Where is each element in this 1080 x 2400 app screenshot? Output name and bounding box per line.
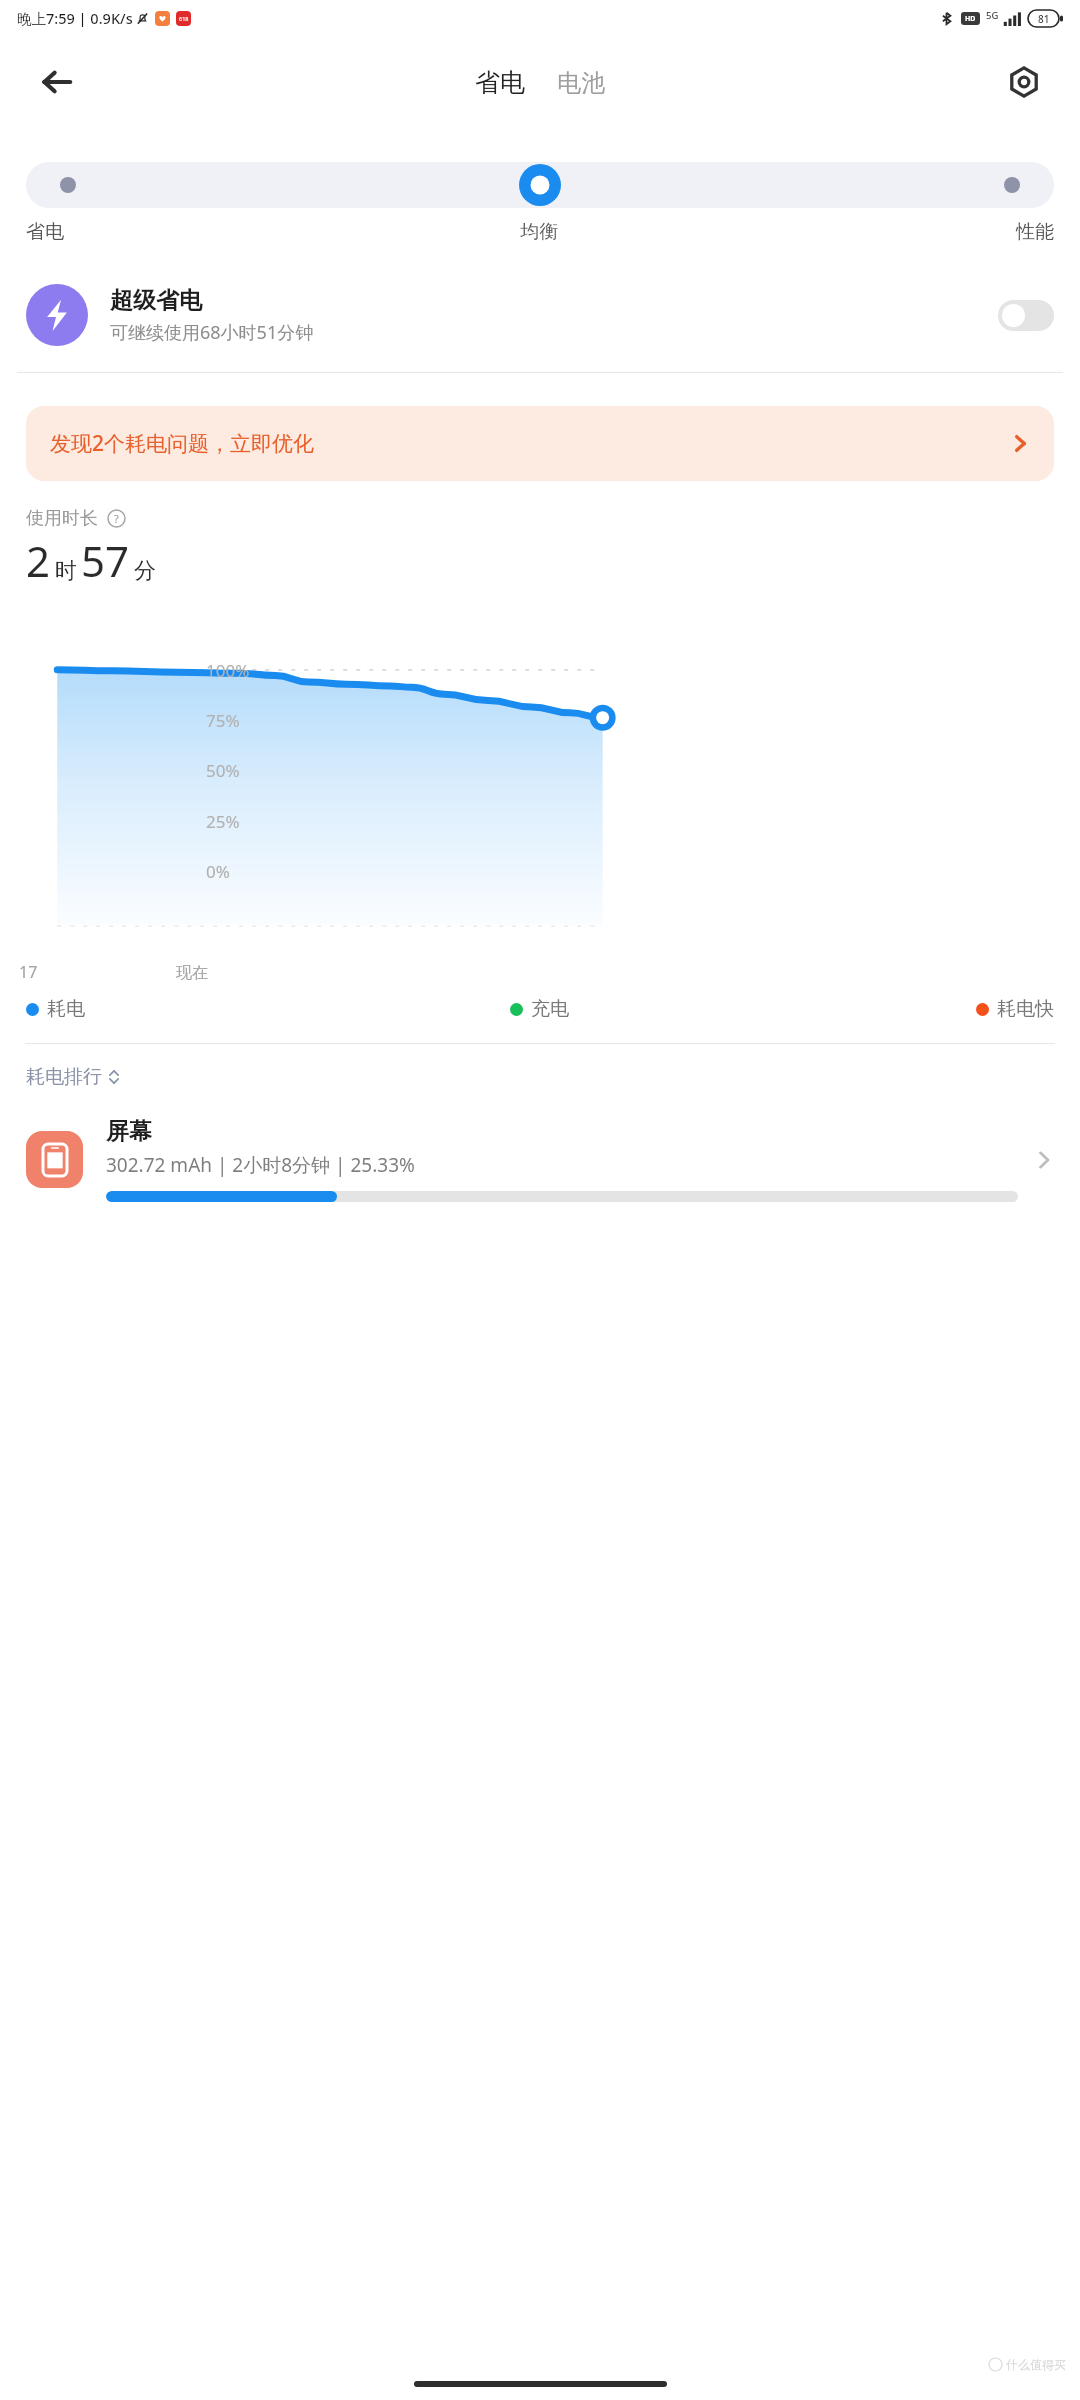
staticText: 耗电快	[997, 997, 1054, 1021]
staticText: 性能	[711, 220, 1054, 244]
staticText: 100%	[206, 659, 250, 682]
button[interactable]: 耗电快	[976, 997, 1054, 1021]
button[interactable]: 屏幕	[0, 1113, 1080, 1206]
button[interactable]: 耗电	[26, 997, 85, 1021]
staticText: 省电	[26, 220, 368, 244]
staticText: 发现2个耗电问题，立即优化	[50, 429, 1011, 458]
staticText: 57	[81, 532, 130, 589]
button[interactable]: 省电	[469, 61, 531, 104]
staticText: 0%	[206, 860, 230, 883]
staticText: 屏幕	[106, 1117, 152, 1146]
staticText: 电池	[557, 68, 605, 98]
staticText: ?	[114, 511, 119, 526]
button[interactable]: 电池	[551, 62, 611, 104]
button[interactable]	[26, 162, 1054, 208]
button[interactable]: 超级省电	[0, 278, 1080, 352]
staticText: 可继续使用68小时51分钟	[110, 320, 314, 345]
button[interactable]: 发现2个耗电问题，立即优化	[26, 406, 1054, 481]
staticText: 25%	[206, 810, 240, 833]
button[interactable]: Back	[33, 58, 81, 106]
button[interactable]: 耗电排行	[26, 1061, 121, 1093]
staticText: 17	[19, 961, 38, 983]
button[interactable]: Settings	[1000, 58, 1048, 106]
staticText: 分	[134, 557, 156, 585]
staticText: 618	[179, 15, 189, 22]
staticText: 时	[55, 557, 77, 585]
button[interactable]: 使用时长	[26, 507, 126, 530]
staticText: 50%	[206, 759, 240, 782]
staticText: 充电	[531, 997, 569, 1021]
staticText: HD	[965, 14, 976, 24]
staticText: 81	[1038, 12, 1050, 26]
staticText: 5G	[986, 9, 999, 22]
staticText: 什么值得买	[1006, 2357, 1066, 2372]
staticText: 超级省电	[110, 286, 202, 315]
staticText: 2	[26, 532, 51, 589]
staticText: 省电	[475, 67, 525, 98]
staticText: 现在	[176, 963, 208, 983]
button[interactable]: 充电	[510, 997, 569, 1021]
staticText: 使用时长	[26, 507, 98, 530]
staticText: 302.72 mAh | 2小时8分钟 | 25.33%	[106, 1152, 415, 1178]
staticText: 耗电排行	[26, 1065, 102, 1089]
staticText: 耗电	[47, 997, 85, 1021]
staticText: 晚上7:59 | 0.9K/s	[17, 8, 133, 28]
staticText: 75%	[206, 709, 240, 732]
staticText: 均衡	[368, 220, 711, 244]
button[interactable]: Super power saving toggle	[998, 300, 1054, 331]
